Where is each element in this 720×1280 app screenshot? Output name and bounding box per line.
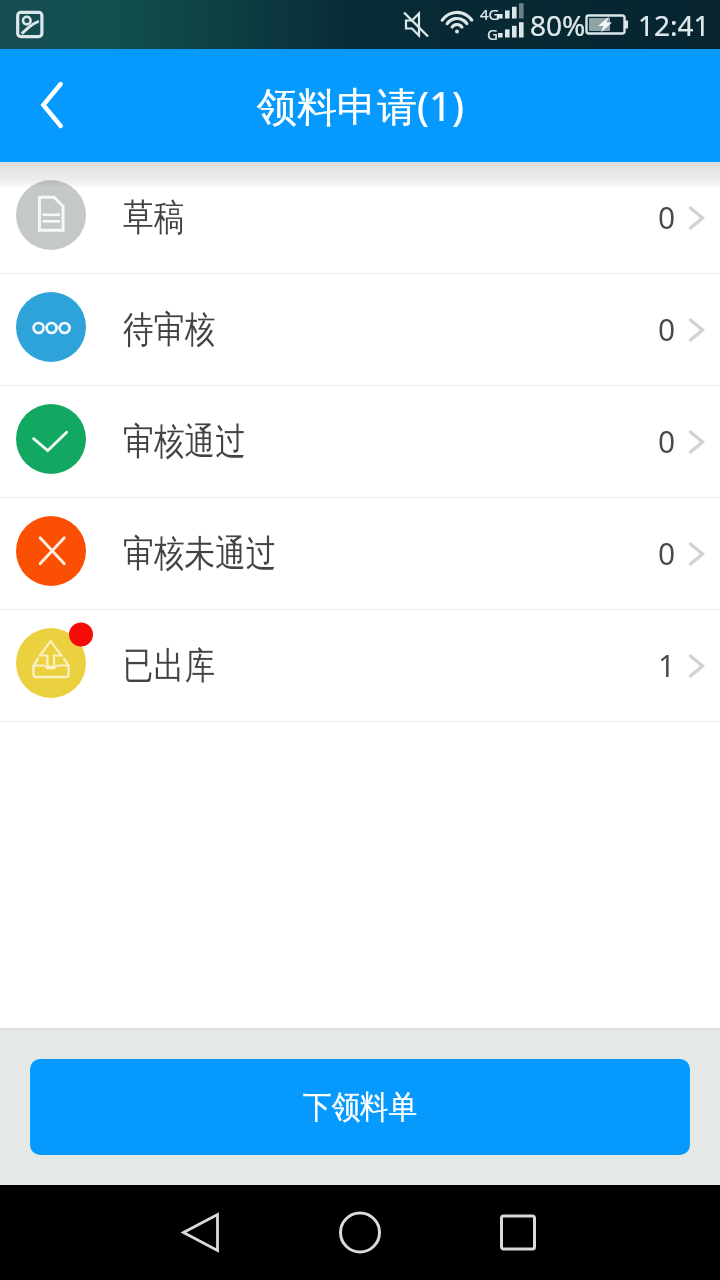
- button[interactable]: Back: [0, 49, 104, 162]
- button[interactable]: 审核通过: [0, 386, 720, 497]
- staticText: G: [487, 24, 498, 44]
- staticText: 1: [658, 645, 676, 686]
- button[interactable]: 已出库: [0, 610, 720, 721]
- staticText: 已出库: [123, 642, 215, 689]
- button[interactable]: Back: [150, 1185, 250, 1280]
- button[interactable]: Home: [310, 1185, 410, 1280]
- staticText: 0: [658, 197, 676, 238]
- staticText: 领料申请(1): [257, 78, 464, 133]
- button[interactable]: 下领料单: [30, 1059, 690, 1155]
- staticText: 12:41: [638, 6, 710, 44]
- staticText: 审核通过: [123, 418, 246, 465]
- staticText: 待审核: [123, 306, 215, 353]
- staticText: 0: [658, 309, 676, 350]
- button[interactable]: 待审核: [0, 274, 720, 385]
- button[interactable]: Recents: [468, 1185, 568, 1280]
- staticText: 80%: [530, 6, 586, 44]
- staticText: 0: [658, 533, 676, 574]
- staticText: 0: [658, 421, 676, 462]
- staticText: 4G: [480, 4, 500, 24]
- button[interactable]: 审核未通过: [0, 498, 720, 609]
- staticText: 草稿: [123, 194, 184, 241]
- staticText: 审核未通过: [123, 530, 276, 577]
- staticText: 下领料单: [303, 1087, 417, 1127]
- button[interactable]: 草稿: [0, 162, 720, 273]
